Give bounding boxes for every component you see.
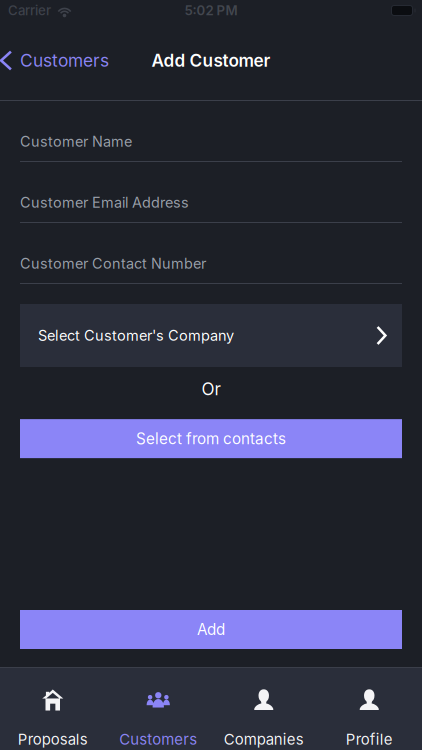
staticText: Add Customer xyxy=(151,50,270,71)
staticText: Customers xyxy=(20,50,109,71)
button[interactable]: Proposals xyxy=(0,667,105,750)
button[interactable]: Select Customer's Company xyxy=(20,304,402,367)
staticText: Or xyxy=(201,379,220,399)
button[interactable]: Customers xyxy=(105,667,211,750)
staticText: Customers xyxy=(119,730,197,748)
staticText: Customer Contact Number xyxy=(20,255,206,272)
staticText: Select Customer's Company xyxy=(38,327,234,344)
staticText: Add xyxy=(197,620,225,638)
staticText: 5:02 PM xyxy=(184,3,237,18)
staticText: Proposals xyxy=(18,730,88,748)
staticText: Select from contacts xyxy=(136,430,286,448)
button[interactable]: Add xyxy=(20,610,402,649)
staticText: Companies xyxy=(224,730,304,748)
button[interactable]: Companies xyxy=(211,667,316,750)
button[interactable]: Profile xyxy=(316,667,422,750)
button[interactable]: Customers xyxy=(0,38,119,82)
staticText: Profile xyxy=(346,730,393,748)
staticText: Carrier xyxy=(8,3,51,18)
staticText: Customer Name xyxy=(20,133,132,150)
staticText: Customer Email Address xyxy=(20,194,189,211)
button[interactable]: Select from contacts xyxy=(20,419,402,458)
